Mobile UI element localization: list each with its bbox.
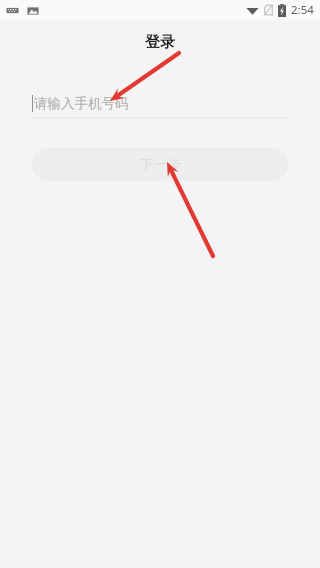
staticText: 2:54 xyxy=(291,2,314,18)
staticText: 请输入手机号码 xyxy=(34,95,129,112)
staticText: 登录 xyxy=(0,33,320,52)
other: Screenshot xyxy=(27,5,39,17)
staticText: 下一步 xyxy=(140,156,181,173)
other: Keyboard xyxy=(6,4,19,17)
button[interactable]: 请输入手机号码 xyxy=(32,89,288,117)
button[interactable]: 下一步 xyxy=(32,148,288,181)
